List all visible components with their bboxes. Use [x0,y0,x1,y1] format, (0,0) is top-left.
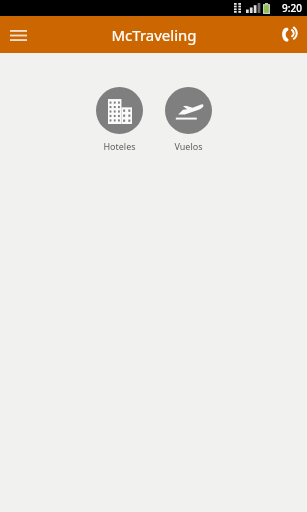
button[interactable]: Call [270,16,307,53]
staticText: Vuelos [174,140,203,152]
button[interactable]: Vuelos [159,85,217,154]
staticText: 9:20 [282,1,302,15]
button[interactable]: Open navigation drawer [0,17,36,53]
staticText: Hoteles [103,140,136,152]
button[interactable]: Hoteles [90,85,148,154]
staticText: McTraveling [111,25,197,45]
